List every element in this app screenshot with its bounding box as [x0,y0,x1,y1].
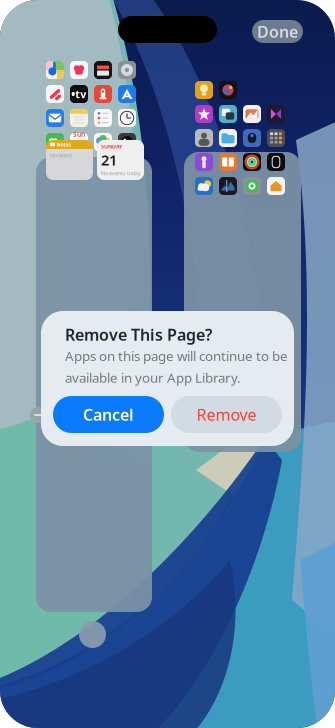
button[interactable]: Remove [171,396,282,433]
staticText: No events today [101,170,141,177]
staticText: 21 [101,150,117,170]
staticText: Apps on this page will continue to be [65,347,288,365]
staticText: Sun [73,130,85,139]
staticText: Remove [196,404,256,425]
staticText: SUNDAY [101,143,122,150]
staticText: tv [75,87,86,101]
staticText: No Notes [50,152,73,159]
staticText: Done [257,21,298,42]
staticText: Notes [57,141,72,148]
staticText: Remove This Page? [65,324,212,345]
button[interactable]: Done [252,20,303,43]
button[interactable]: Cancel [53,396,164,433]
staticText: 21 [71,138,87,155]
staticText: Cancel [83,404,134,425]
staticText: available in your App Library. [65,369,241,386]
